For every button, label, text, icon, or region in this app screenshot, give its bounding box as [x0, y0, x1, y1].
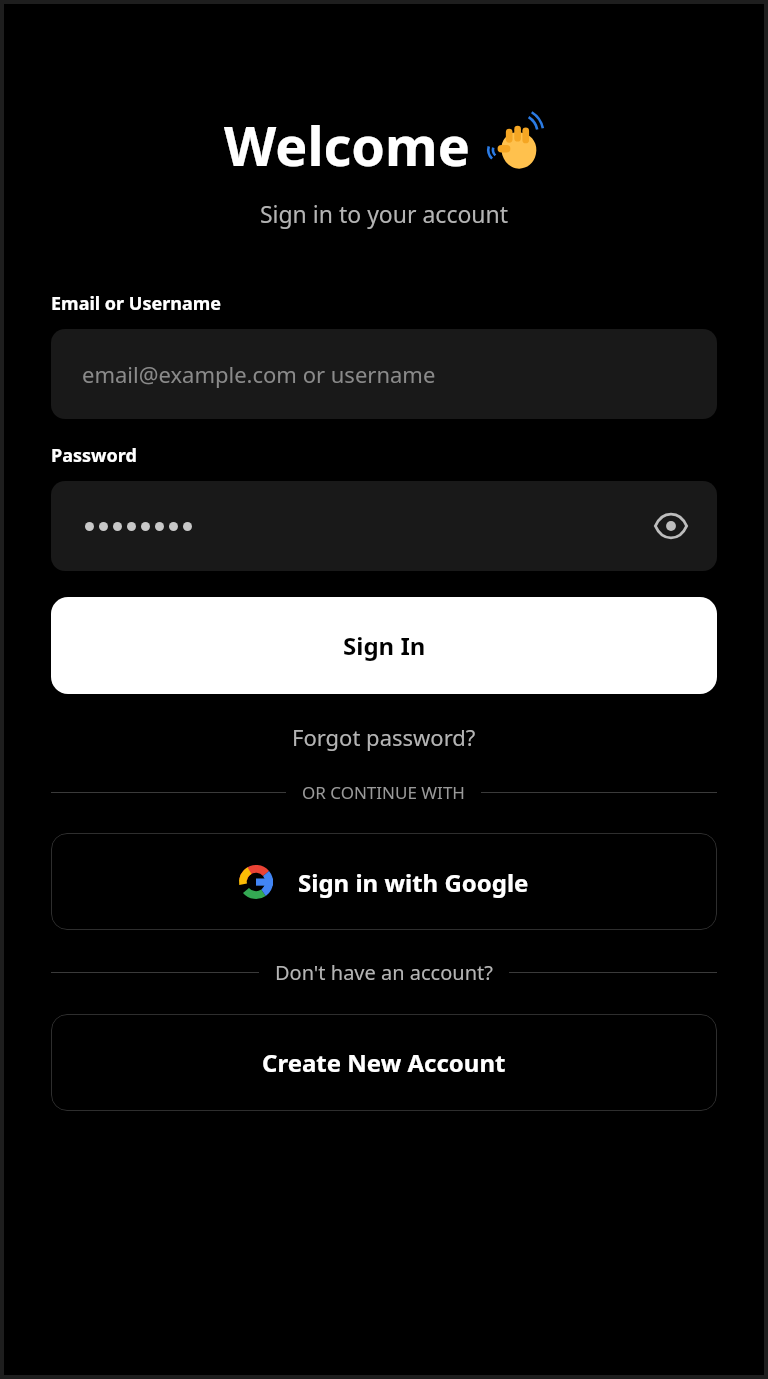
- staticText: Forgot password?: [292, 722, 476, 752]
- staticText: Create New Account: [262, 1046, 506, 1079]
- button[interactable]: Show password: [649, 504, 693, 548]
- button[interactable]: email@example.com or username: [51, 329, 717, 419]
- button[interactable]: Create New Account: [51, 1014, 717, 1111]
- staticText: email@example.com or username: [82, 359, 436, 389]
- button[interactable]: Show password: [51, 481, 717, 571]
- staticText: Sign in to your account: [4, 198, 764, 229]
- staticText: Sign in with Google: [298, 866, 529, 899]
- button[interactable]: Sign In: [51, 597, 717, 694]
- button[interactable]: Forgot password?: [280, 716, 488, 758]
- staticText: Email or Username: [51, 291, 222, 316]
- button[interactable]: Sign in with Google: [51, 833, 717, 930]
- staticText: Don't have an account?: [275, 959, 493, 986]
- staticText: OR CONTINUE WITH: [302, 781, 465, 804]
- staticText: Password: [51, 443, 137, 468]
- staticText: Welcome: [224, 108, 470, 182]
- staticText: Sign In: [343, 629, 426, 662]
